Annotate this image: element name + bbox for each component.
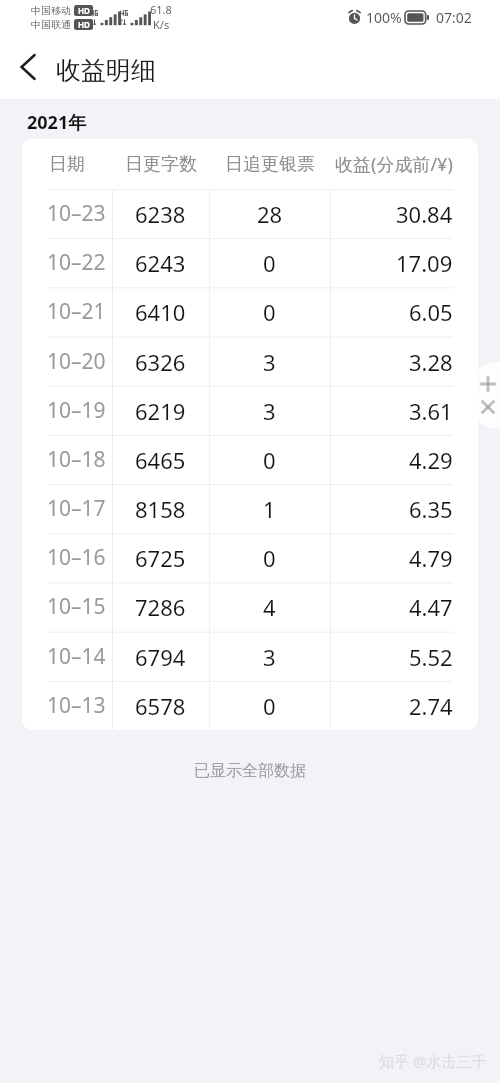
staticText: 4.29 [409,445,453,475]
staticText: 6.05 [409,297,453,327]
staticText: 0 [263,248,276,278]
staticText: 100% [366,8,402,27]
staticText: 2021年 [27,110,87,135]
staticText: 0 [263,297,276,327]
button[interactable]: 10–22 [22,238,478,287]
staticText: 6410 [135,297,186,327]
staticText: 6465 [135,445,186,475]
staticText: 61.8 [150,2,172,17]
staticText: 07:02 [436,8,472,27]
staticText: 已显示全部数据 [194,761,306,781]
staticText: 10–19 [47,396,106,425]
staticText: 0 [263,691,276,721]
staticText: 17.09 [396,248,453,278]
staticText: 中国联通 [31,18,71,31]
staticText: 28 [257,199,283,229]
staticText: HD [78,19,90,30]
button[interactable]: 10–14 [22,632,478,681]
staticText: 10–21 [47,297,106,326]
staticText: K/s [153,17,170,32]
staticText: 3.28 [409,347,453,377]
staticText: 1 [263,494,276,524]
staticText: 收益明细 [56,55,156,86]
staticText: 4.79 [409,543,453,573]
button[interactable]: 10–15 [22,582,478,631]
staticText: 10–22 [47,248,106,277]
staticText: 30.84 [396,199,453,229]
staticText: 6238 [135,199,186,229]
staticText: 10–14 [47,642,106,671]
staticText: 10–18 [47,445,106,474]
staticText: 2.74 [409,691,453,721]
button[interactable]: 10–18 [22,435,478,484]
button[interactable]: Back [7,45,51,89]
staticText: 6243 [135,248,186,278]
staticText: 日更字数 [125,153,197,176]
button[interactable]: 10–19 [22,386,478,435]
button[interactable]: 10–13 [22,681,478,730]
staticText: 10–13 [47,691,106,720]
staticText: 10–16 [47,543,106,572]
staticText: 知乎 @水击三千 [379,1051,487,1071]
button[interactable]: 10–20 [22,337,478,386]
button[interactable]: 10–16 [22,533,478,582]
staticText: 日追更银票 [225,153,315,176]
staticText: 10–23 [47,199,106,228]
staticText: 6725 [135,543,186,573]
staticText: HD [78,5,90,16]
button[interactable]: Add screenshot [473,369,500,399]
staticText: 收益(分成前/¥) [335,152,453,177]
button[interactable]: 10–17 [22,484,478,533]
staticText: 日期 [49,153,85,176]
staticText: 6794 [135,642,186,672]
staticText: 中国移动 [31,4,71,17]
staticText: 6.35 [409,494,453,524]
staticText: 8158 [135,494,186,524]
staticText: 3 [263,642,276,672]
staticText: 5.52 [409,642,453,672]
staticText: 4.47 [409,592,453,622]
staticText: 10–20 [47,347,106,376]
staticText: 6578 [135,691,186,721]
staticText: 3 [263,347,276,377]
staticText: 3.61 [409,396,453,426]
staticText: 3 [263,396,276,426]
staticText: 7286 [135,592,186,622]
button[interactable]: 10–21 [22,287,478,336]
staticText: 0 [263,543,276,573]
staticText: 10–17 [47,494,106,523]
staticText: 6219 [135,396,186,426]
staticText: 4 [263,592,276,622]
staticText: 10–15 [47,592,106,621]
staticText: 0 [263,445,276,475]
button[interactable]: Close [473,392,500,422]
staticText: 6326 [135,347,186,377]
button[interactable]: 10–23 [22,189,478,238]
